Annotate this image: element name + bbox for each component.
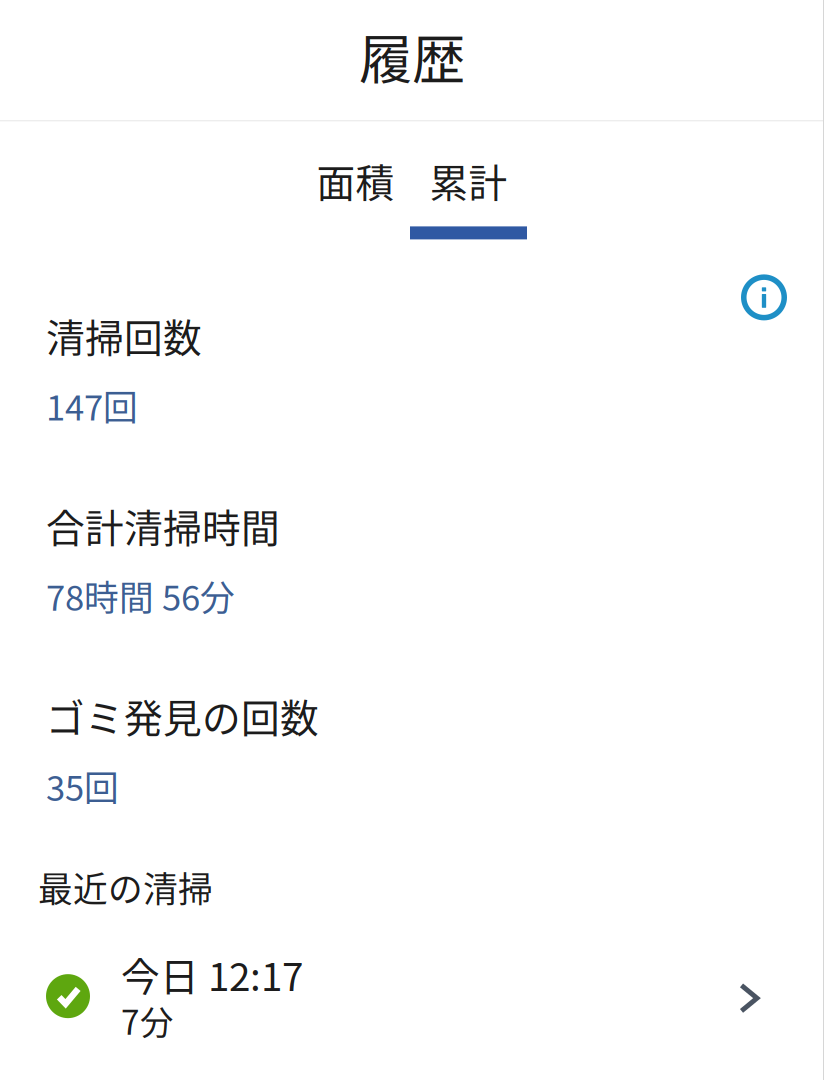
staticText: 今日 12:17	[121, 946, 303, 1002]
staticText: 合計清掃時間	[46, 498, 280, 554]
staticText: 78時間 56分	[46, 571, 235, 621]
button[interactable]: 情報	[741, 239, 824, 320]
button[interactable]: 累計	[412, 121, 525, 239]
staticText: 147回	[46, 380, 138, 431]
staticText: 履歴	[359, 17, 465, 95]
staticText: 35回	[46, 761, 119, 811]
staticText: 7分	[121, 996, 173, 1044]
staticText: 面積	[316, 152, 394, 208]
staticText: 累計	[429, 152, 507, 208]
button[interactable]: 今日 12:17	[0, 953, 824, 1043]
staticText: ゴミ発見の回数	[46, 688, 319, 744]
button[interactable]: 面積	[299, 121, 412, 239]
staticText: 清掃回数	[46, 307, 202, 363]
staticText: 最近の清掃	[38, 862, 213, 912]
